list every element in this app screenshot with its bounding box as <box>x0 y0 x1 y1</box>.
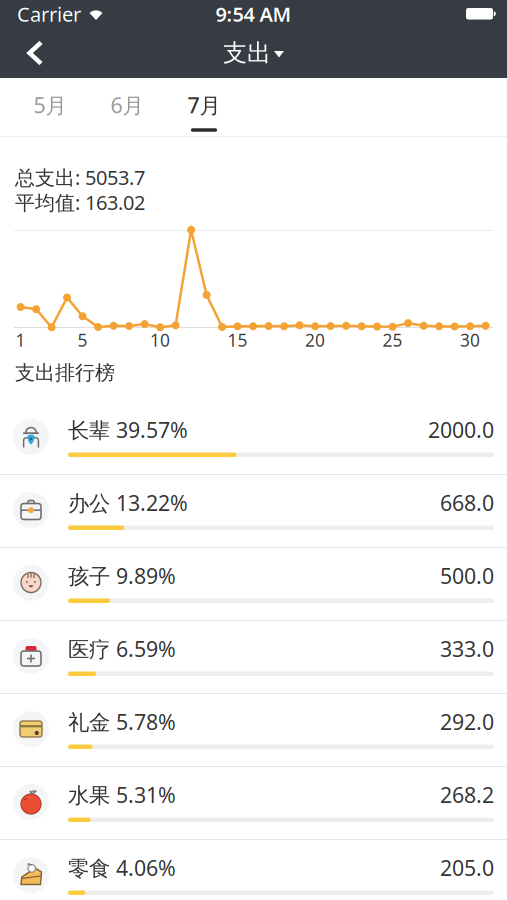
staticText: 5 <box>78 328 88 351</box>
button[interactable]: 6月 <box>97 85 157 125</box>
staticText: 6月 <box>110 91 143 119</box>
staticText: 7月 <box>187 91 220 119</box>
staticText: 333.0 <box>440 634 494 663</box>
staticText: 长辈 39.57% <box>68 415 188 444</box>
staticText: 孩子 9.89% <box>68 561 176 590</box>
staticText: 500.0 <box>440 561 494 590</box>
button[interactable]: 长辈 39.57% <box>0 402 507 475</box>
staticText: 2000.0 <box>428 415 494 444</box>
button[interactable]: 零食 4.06% <box>0 840 507 900</box>
button[interactable]: 办公 13.22% <box>0 475 507 548</box>
staticText: 平均值: 163.02 <box>15 189 145 216</box>
staticText: 15 <box>228 328 248 351</box>
staticText: 25 <box>383 328 403 351</box>
staticText: 668.0 <box>440 488 494 517</box>
staticText: 20 <box>305 328 325 351</box>
staticText: 268.2 <box>440 780 494 809</box>
staticText: 9:54 AM <box>215 1 291 27</box>
staticText: 零食 4.06% <box>68 853 176 882</box>
button[interactable]: 水果 5.31% <box>0 767 507 840</box>
staticText: 10 <box>150 328 170 351</box>
staticText: 支出排行榜 <box>15 360 115 385</box>
staticText: 总支出: 5053.7 <box>15 164 145 191</box>
button[interactable]: Back <box>0 27 55 79</box>
button[interactable]: 5月 <box>20 85 80 125</box>
staticText: 5月 <box>33 91 66 119</box>
staticText: 礼金 5.78% <box>68 707 176 736</box>
button[interactable]: 支出 <box>223 38 284 68</box>
staticText: 30 <box>460 328 480 351</box>
staticText: 水果 5.31% <box>68 780 176 809</box>
staticText: 292.0 <box>440 707 494 736</box>
staticText: 支出 <box>223 38 271 68</box>
staticText: 办公 13.22% <box>68 488 188 517</box>
staticText: 205.0 <box>440 853 494 882</box>
staticText: Carrier <box>17 1 81 27</box>
staticText: 1 <box>16 328 26 351</box>
button[interactable]: 医疗 6.59% <box>0 621 507 694</box>
button[interactable]: 7月 <box>174 85 234 125</box>
button[interactable]: 孩子 9.89% <box>0 548 507 621</box>
staticText: 医疗 6.59% <box>68 634 176 663</box>
button[interactable]: 礼金 5.78% <box>0 694 507 767</box>
